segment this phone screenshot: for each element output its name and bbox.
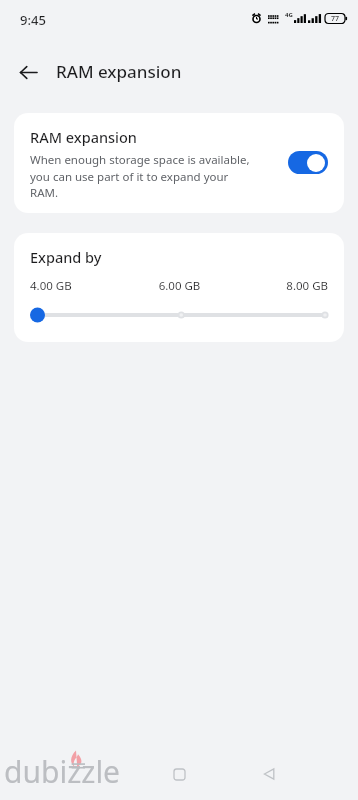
staticText: 8.00 GB [229,278,328,294]
staticText: RAM expansion [56,60,182,83]
button[interactable]: RAM expansion toggle [288,151,328,174]
button[interactable]: Back [256,761,282,787]
staticText: 6.00 GB [130,278,229,294]
staticText: 4.00 GB [30,278,130,294]
staticText: 77 [331,14,340,24]
staticText: RAM expansion [30,127,137,147]
button[interactable]: RAM expansion [14,113,344,213]
staticText: 9:45 [20,11,46,29]
staticText: Expand by [30,247,102,267]
staticText: 4G [285,11,293,19]
button[interactable]: Expand by slider [30,304,328,326]
button[interactable]: Home [166,761,192,787]
staticText: When enough storage space is available, … [30,152,254,200]
button[interactable]: Back [12,56,44,88]
staticText: dubizzle [4,751,121,792]
